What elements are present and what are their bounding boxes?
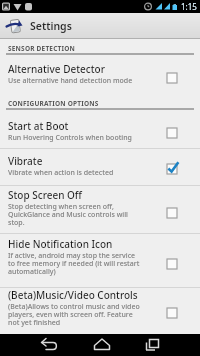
staticText: Alternative Detector	[8, 62, 105, 76]
button[interactable]: Vibrate	[0, 149, 200, 185]
staticText: Use alternative hand detection mode	[8, 76, 133, 86]
staticText: (Beta)Allows to control music and video …	[8, 302, 140, 327]
staticText: Stop detecting when screen off, QuickGla…	[8, 202, 128, 227]
staticText: CONFIGURATION OPTIONS	[8, 99, 99, 108]
staticText: 1:15	[181, 1, 197, 12]
staticText: Start at Boot	[8, 119, 69, 133]
button[interactable]: Hide Notification Icon	[0, 234, 200, 287]
staticText: Settings	[30, 19, 72, 33]
button[interactable]: (Beta)Music/Video Controls	[0, 288, 200, 330]
staticText: Hide Notification Icon	[8, 237, 113, 251]
staticText: Vibrate	[8, 154, 43, 168]
staticText: Stop Screen Off	[8, 188, 82, 202]
staticText: Run Hovering Controls when booting	[8, 133, 132, 143]
staticText: If active, android may stop the service …	[8, 251, 140, 276]
button[interactable]: Alternative Detector	[0, 55, 200, 91]
button[interactable]: Stop Screen Off	[0, 186, 200, 233]
staticText: Vibrate when action is detected	[8, 168, 114, 178]
button[interactable]: Settings	[0, 13, 200, 38]
button[interactable]: Start at Boot	[0, 110, 200, 148]
staticText: SENSOR DETECTION	[8, 44, 76, 53]
staticText: (Beta)Music/Video Controls	[8, 288, 138, 302]
